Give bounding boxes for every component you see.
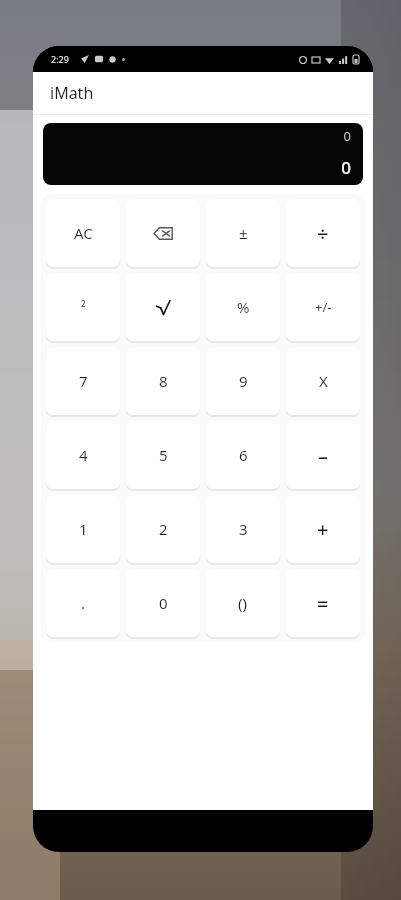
button[interactable]: 0 [43,123,363,185]
button[interactable]: 6 [206,421,280,489]
button[interactable]: ÷ [286,199,360,267]
button[interactable]: ± [206,199,280,267]
button[interactable]: X [286,347,360,415]
button[interactable]: () [206,569,280,637]
button[interactable]: 5 [126,421,200,489]
staticText: 2 [81,298,86,309]
button[interactable]: + [286,495,360,563]
button[interactable]: 7 [46,347,120,415]
button[interactable]: – [286,421,360,489]
button[interactable]: Backspace [126,199,200,267]
button[interactable]: 9 [206,347,280,415]
button[interactable]: Square root [126,273,200,341]
button[interactable]: Square [46,273,120,341]
staticText: 1 [79,519,88,539]
staticText: 5 [159,445,168,465]
button[interactable]: 2 [126,495,200,563]
button[interactable]: 1 [46,495,120,563]
button[interactable]: 8 [126,347,200,415]
staticText: 2 [159,519,168,539]
staticText: iMath [50,82,94,104]
button[interactable]: 0 [126,569,200,637]
button[interactable]: iMath [33,72,373,114]
button[interactable]: % [206,273,280,341]
staticText: + [317,516,329,543]
button[interactable]: . [46,569,120,637]
button[interactable]: +/- [286,273,360,341]
staticText: 0 [341,156,351,179]
staticText: +/- [315,298,332,316]
staticText: 6 [239,445,248,465]
staticText: – [318,442,328,469]
staticText: ± [239,223,248,243]
staticText: 0 [159,593,168,613]
staticText: 0 [343,127,351,145]
staticText: () [238,593,248,613]
staticText: % [237,297,250,317]
staticText: 8 [159,371,168,391]
staticText: 9 [239,371,248,391]
staticText: X [319,371,328,391]
staticText: 3 [239,519,248,539]
button[interactable]: 4 [46,421,120,489]
staticText: . [81,593,86,613]
staticText: ÷ [317,220,329,247]
staticText: 4 [79,445,88,465]
button[interactable]: = [286,569,360,637]
button[interactable]: AC [46,199,120,267]
staticText: AC [74,223,93,243]
staticText: 2:29 [51,53,69,65]
staticText: 7 [79,371,88,391]
button[interactable]: 3 [206,495,280,563]
staticText: = [317,590,329,617]
